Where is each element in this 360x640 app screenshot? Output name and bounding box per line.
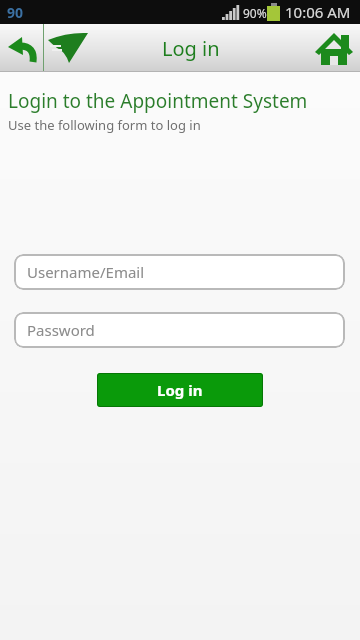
staticText: 90% [243, 5, 267, 21]
staticText: Password [27, 320, 95, 340]
staticText: 90 [7, 3, 24, 22]
button[interactable] [0, 24, 43, 72]
staticText: Log in [162, 35, 220, 62]
staticText: Log in [157, 380, 203, 400]
staticText: Login to the Appointment System [8, 88, 308, 114]
button[interactable]: Password [14, 312, 345, 348]
button[interactable]: Username/Email [14, 254, 345, 290]
button[interactable]: Log in [97, 373, 263, 407]
staticText: Use the following form to log in [8, 116, 201, 134]
staticText: 10:06 AM [285, 2, 351, 22]
button[interactable] [304, 24, 360, 72]
staticText: Username/Email [27, 262, 145, 282]
